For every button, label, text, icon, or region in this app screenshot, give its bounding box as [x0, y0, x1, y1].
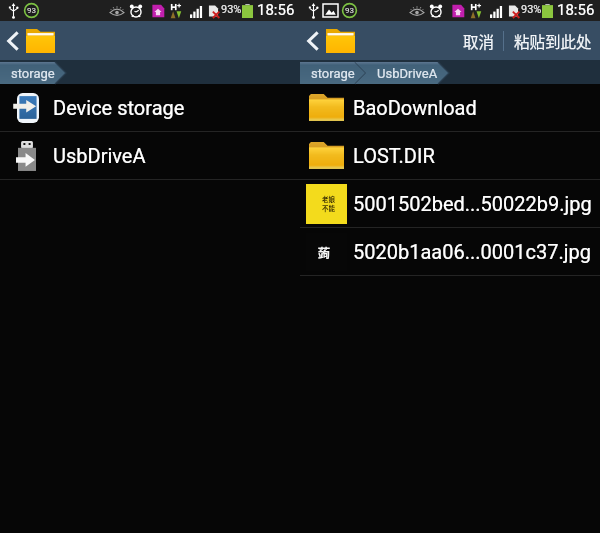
staticText: 18:56 [557, 1, 595, 19]
staticText: UsbDriveA [377, 66, 438, 81]
staticText: 老娘 [322, 194, 335, 203]
staticText: BaoDownload [353, 96, 477, 119]
staticText: 18:56 [257, 1, 295, 19]
button[interactable]: 蒟 [300, 228, 600, 275]
staticText: 93% [221, 3, 242, 16]
button[interactable]: 粘贴到此处 [504, 21, 600, 60]
staticText: 93% [521, 3, 542, 16]
staticText: 5020b1aa06...0001c37.jpg [353, 240, 591, 263]
staticText: 5001502bed...50022b9.jpg [353, 192, 592, 215]
staticText: UsbDriveA [53, 144, 146, 167]
staticText: 93 [345, 6, 354, 15]
staticText: Device storage [53, 96, 185, 119]
staticText: 粘贴到此处 [514, 30, 592, 52]
staticText: 93 [27, 6, 36, 15]
staticText: 取消 [463, 30, 495, 52]
staticText: storage [11, 66, 55, 81]
button[interactable]: 老娘 [300, 180, 600, 227]
staticText: 蒟 [318, 244, 331, 261]
button[interactable]: Current folder [324, 21, 356, 60]
button[interactable]: Back [300, 21, 324, 60]
staticText: 不能 [322, 203, 335, 212]
button[interactable]: UsbDriveA [366, 62, 449, 84]
button[interactable]: Back [0, 21, 24, 60]
button[interactable]: 取消 [449, 21, 503, 60]
staticText: storage [311, 66, 355, 81]
button[interactable]: Current folder [24, 21, 56, 60]
button[interactable]: storage [0, 62, 66, 84]
button[interactable]: UsbDriveA [0, 132, 300, 179]
button[interactable]: Device storage [0, 84, 300, 131]
staticText: LOST.DIR [353, 144, 435, 167]
button[interactable]: BaoDownload [300, 84, 600, 131]
button[interactable]: storage [300, 62, 366, 84]
button[interactable]: LOST.DIR [300, 132, 600, 179]
